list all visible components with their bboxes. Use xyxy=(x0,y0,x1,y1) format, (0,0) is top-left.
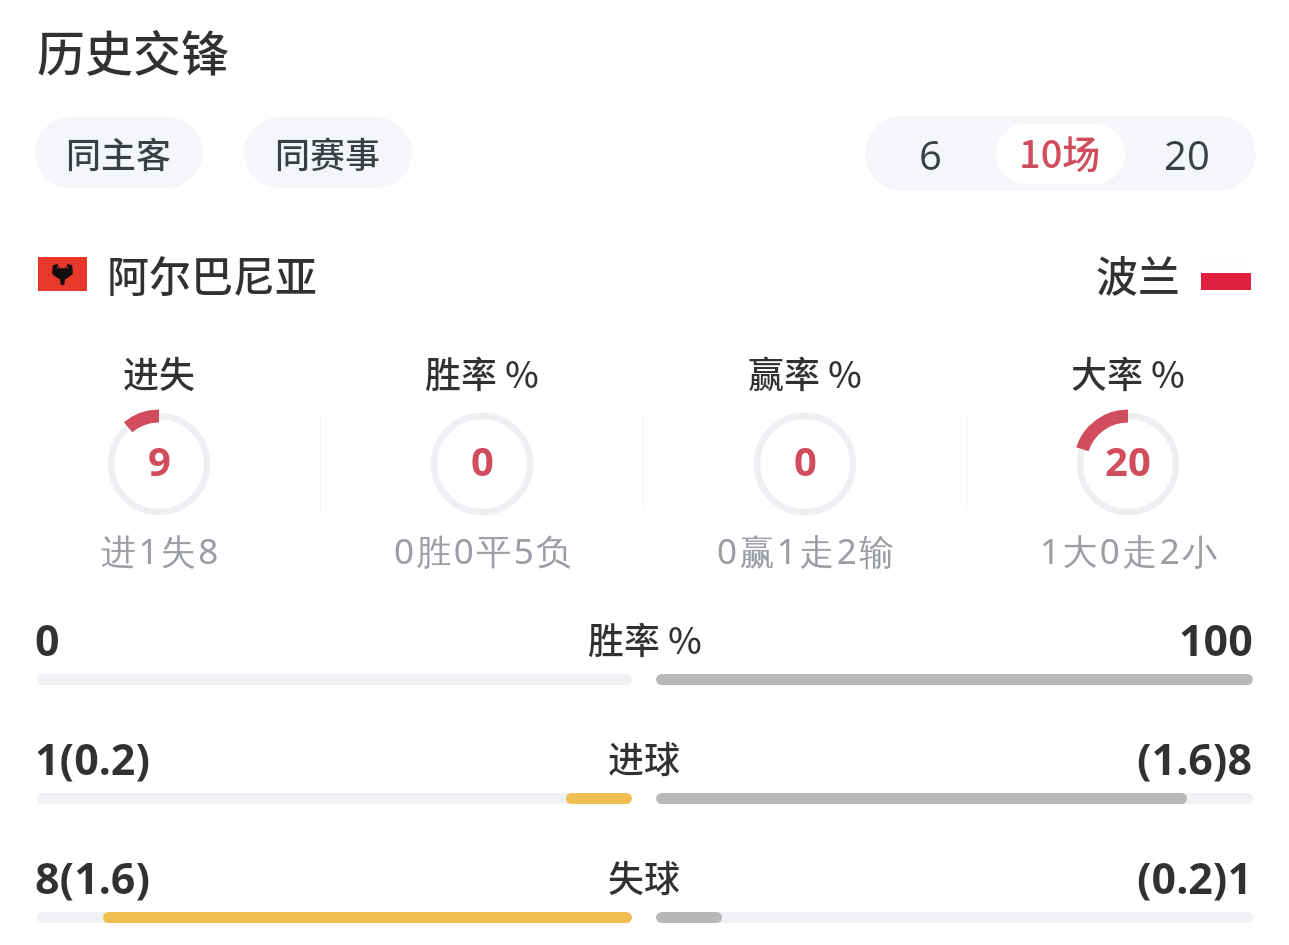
button[interactable]: 同主客 xyxy=(35,117,203,188)
staticText: 0 xyxy=(794,433,817,487)
button[interactable]: 大率 % xyxy=(967,345,1289,580)
staticText: 6 xyxy=(919,127,942,181)
staticText: 0 xyxy=(471,433,494,487)
button[interactable]: 胜率 % xyxy=(321,345,643,580)
staticText: (1.6)8 xyxy=(1137,729,1253,788)
staticText: 1(0.2) xyxy=(35,729,151,788)
button[interactable]: 20 xyxy=(1124,116,1250,191)
staticText: 10场 xyxy=(1019,124,1101,179)
button[interactable]: 同赛事 xyxy=(244,117,412,188)
staticText: 20 xyxy=(1164,127,1210,181)
staticText: 波兰 xyxy=(1096,243,1181,304)
staticText: 失球 xyxy=(608,850,681,902)
staticText: 进失 xyxy=(123,346,196,398)
staticText: 阿尔巴尼亚 xyxy=(107,243,318,304)
staticText: 进球 xyxy=(608,731,681,783)
button[interactable]: 10场 xyxy=(996,116,1124,191)
staticText: 胜率 % xyxy=(425,346,539,398)
staticText: 20 xyxy=(1105,433,1151,487)
staticText: (0.2)1 xyxy=(1137,848,1253,907)
staticText: 历史交锋 xyxy=(37,15,230,85)
staticText: 8(1.6) xyxy=(35,848,151,907)
staticText: 同赛事 xyxy=(275,127,381,178)
staticText: 胜率 % xyxy=(588,612,702,664)
staticText: 0 xyxy=(35,610,60,669)
staticText: 9 xyxy=(148,433,171,487)
button[interactable]: 6 xyxy=(865,116,996,191)
staticText: 进1失8 xyxy=(101,527,221,575)
staticText: 0胜0平5负 xyxy=(394,527,574,575)
staticText: 1大0走2小 xyxy=(1040,527,1220,575)
button[interactable]: 进失 xyxy=(0,345,320,580)
staticText: 大率 % xyxy=(1071,346,1185,398)
staticText: 赢率 % xyxy=(748,346,862,398)
button[interactable]: 赢率 % xyxy=(644,345,966,580)
staticText: 100 xyxy=(1179,610,1253,669)
staticText: 同主客 xyxy=(66,127,172,178)
button[interactable]: Albania xyxy=(38,257,87,291)
staticText: 0赢1走2输 xyxy=(717,527,897,575)
button[interactable]: Poland xyxy=(1201,257,1251,290)
